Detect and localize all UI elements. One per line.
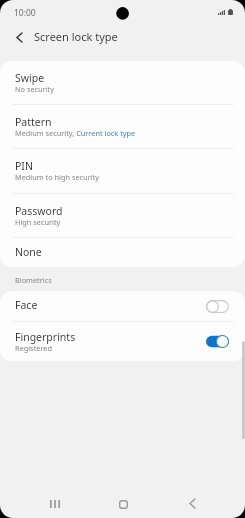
button[interactable]: Password: [0, 194, 245, 237]
staticText: Medium to high security: [15, 172, 99, 182]
button[interactable]: None: [0, 238, 245, 267]
staticText: Swipe: [15, 71, 45, 85]
button[interactable]: Recent apps: [42, 491, 68, 517]
button[interactable]: Navigate up: [7, 25, 31, 49]
button[interactable]: Back: [179, 490, 205, 516]
button[interactable]: Fingerprints: [0, 322, 245, 361]
staticText: No security: [15, 84, 54, 94]
button[interactable]: PIN: [0, 149, 245, 193]
staticText: Pattern: [15, 115, 52, 129]
staticText: High security: [15, 217, 61, 227]
staticText: Password: [15, 204, 63, 218]
button[interactable]: Pattern: [0, 105, 245, 148]
button[interactable]: Face: [0, 291, 245, 321]
staticText: Face: [15, 298, 38, 312]
staticText: 10:00: [14, 7, 36, 19]
staticText: PIN: [15, 159, 33, 173]
button[interactable]: Home: [110, 491, 136, 517]
staticText: Screen lock type: [34, 29, 118, 44]
staticText: Biometrics: [15, 275, 52, 285]
staticText: Medium security, Current lock type: [15, 128, 136, 138]
staticText: Registered: [15, 343, 52, 353]
staticText: Fingerprints: [15, 330, 76, 344]
button[interactable]: Swipe: [0, 61, 245, 104]
staticText: None: [15, 245, 42, 259]
